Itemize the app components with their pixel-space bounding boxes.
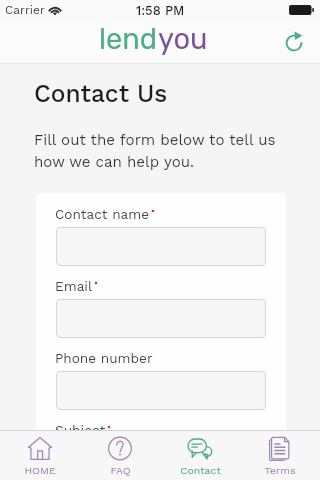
staticText: Carrier — [5, 3, 45, 17]
staticText: you — [158, 22, 208, 56]
staticText: Terms — [264, 464, 296, 476]
staticText: Contact name — [55, 206, 150, 222]
button[interactable]: FAQ — [80, 431, 160, 480]
staticText: Email — [55, 278, 93, 294]
button[interactable]: Terms — [240, 431, 320, 480]
staticText: HOME — [24, 464, 56, 476]
button[interactable] — [56, 227, 266, 266]
staticText: Subject — [55, 422, 106, 438]
staticText: 1:58 PM — [136, 3, 185, 18]
staticText: Contact — [180, 464, 221, 476]
button[interactable]: Refresh — [281, 30, 307, 56]
button[interactable] — [56, 371, 266, 410]
staticText: Fill out the form below to tell us how w… — [34, 131, 276, 171]
staticText: FAQ — [110, 464, 131, 476]
staticText: Contact Us — [34, 79, 168, 108]
button[interactable] — [56, 299, 266, 338]
button[interactable]: Contact — [160, 431, 240, 480]
staticText: lend — [99, 22, 158, 56]
button[interactable]: HOME — [0, 431, 80, 480]
staticText: Phone number — [55, 350, 153, 366]
